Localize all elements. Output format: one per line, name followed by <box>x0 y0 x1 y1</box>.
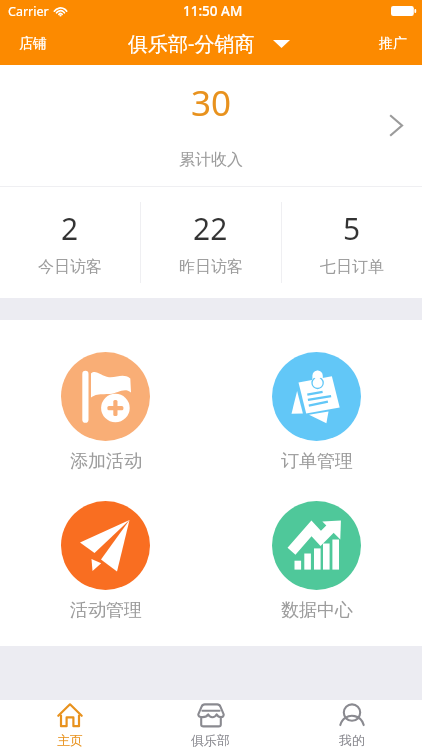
staticText: 推广 <box>379 35 407 53</box>
staticText: 5 <box>343 208 361 249</box>
button[interactable]: 活动管理 <box>0 501 211 622</box>
button[interactable]: 俱乐部 <box>140 700 281 750</box>
button[interactable]: 30 <box>0 65 422 186</box>
staticText: 2 <box>61 208 79 249</box>
button[interactable]: 5 <box>281 187 422 298</box>
staticText: 店铺 <box>19 35 47 53</box>
staticText: 累计收入 <box>179 150 243 170</box>
staticText: 俱乐部-分销商 <box>128 30 255 57</box>
button[interactable] <box>0 22 422 65</box>
button[interactable]: 俱乐部-分销商 <box>128 30 290 57</box>
staticText: 11:50 AM <box>183 2 243 20</box>
button[interactable]: 22 <box>140 187 281 298</box>
button[interactable]: 主页 <box>0 700 140 750</box>
button[interactable]: 2 <box>0 187 140 298</box>
staticText: 主页 <box>57 732 83 748</box>
staticText: 22 <box>193 208 228 249</box>
button[interactable]: 我的 <box>281 700 422 750</box>
staticText: 添加活动 <box>70 450 142 473</box>
button[interactable]: 添加活动 <box>0 352 211 473</box>
staticText: Carrier <box>8 3 49 20</box>
staticText: 今日访客 <box>38 257 102 277</box>
button[interactable]: 数据中心 <box>211 501 422 622</box>
button[interactable]: 推广 <box>379 35 407 53</box>
button[interactable]: 店铺 <box>19 35 47 53</box>
staticText: 七日订单 <box>320 257 384 277</box>
staticText: 数据中心 <box>281 599 353 622</box>
staticText: 活动管理 <box>70 599 142 622</box>
staticText: 俱乐部 <box>191 732 230 748</box>
staticText: 订单管理 <box>281 450 353 473</box>
button[interactable]: 订单管理 <box>211 352 422 473</box>
staticText: 我的 <box>339 732 365 748</box>
staticText: 昨日访客 <box>179 257 243 277</box>
staticText: 30 <box>191 79 232 127</box>
